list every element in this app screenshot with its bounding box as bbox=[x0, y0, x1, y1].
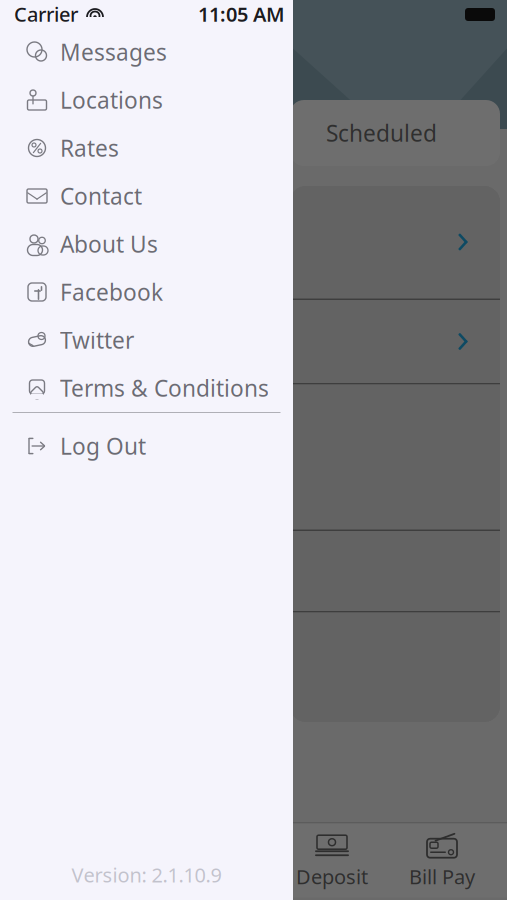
staticText: Facebook bbox=[60, 277, 163, 307]
button[interactable]: Rates bbox=[0, 124, 293, 172]
button[interactable]: Messages bbox=[0, 28, 293, 76]
staticText: Locations bbox=[60, 85, 163, 115]
button[interactable]: Contact bbox=[0, 172, 293, 220]
staticText: Twitter bbox=[60, 325, 134, 355]
button[interactable]: Deposit bbox=[277, 823, 387, 897]
button[interactable]: Twitter bbox=[0, 316, 293, 364]
staticText: Scheduled bbox=[326, 118, 437, 148]
button[interactable]: Terms & Conditions bbox=[0, 364, 293, 412]
button[interactable]: Bill Pay bbox=[387, 823, 497, 897]
staticText: Version: 2.1.10.9 bbox=[71, 861, 221, 888]
staticText: Log Out bbox=[60, 431, 146, 461]
staticText: Contact bbox=[60, 181, 142, 211]
button[interactable]: About Us bbox=[0, 220, 293, 268]
staticText: About Us bbox=[60, 229, 158, 259]
staticText: Bill Pay bbox=[409, 863, 475, 890]
button[interactable]: Log Out bbox=[0, 422, 293, 470]
button[interactable]: Locations bbox=[0, 76, 293, 124]
staticText: Terms & Conditions bbox=[60, 373, 269, 403]
button[interactable]: Facebook bbox=[0, 268, 293, 316]
staticText: Rates bbox=[60, 133, 119, 163]
staticText: Messages bbox=[60, 37, 167, 67]
staticText: Deposit bbox=[296, 863, 368, 890]
staticText: 11:05 AM bbox=[198, 1, 285, 27]
staticText: Carrier bbox=[14, 1, 78, 27]
